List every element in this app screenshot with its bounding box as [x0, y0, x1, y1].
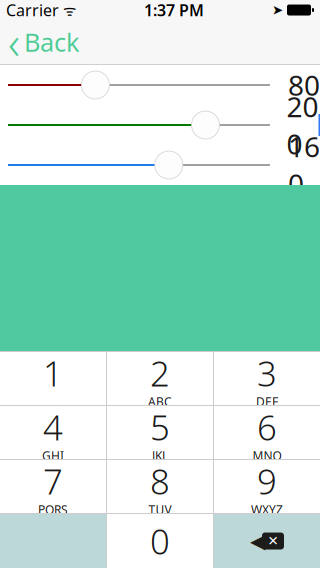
- button[interactable]: 7: [0, 460, 106, 513]
- staticText: 1: [43, 350, 63, 396]
- button[interactable]: 0: [107, 514, 213, 568]
- staticText: Carrier: [6, 0, 59, 21]
- button[interactable]: ‹: [0, 20, 90, 64]
- button[interactable]: 1: [0, 352, 106, 405]
- staticText: ᯤ: [59, 0, 76, 20]
- button[interactable]: 2: [107, 352, 213, 405]
- staticText: ABC: [148, 394, 172, 409]
- button[interactable]: 8: [107, 460, 213, 513]
- staticText: 7: [43, 458, 63, 504]
- staticText: 200: [286, 88, 318, 162]
- button[interactable]: 9: [214, 460, 320, 513]
- staticText: JKL: [152, 448, 168, 463]
- button[interactable]: 4: [0, 406, 106, 459]
- staticText: 80: [288, 66, 320, 104]
- staticText: 2: [150, 350, 170, 396]
- staticText: ◀: [250, 530, 265, 552]
- staticText: 5: [150, 404, 170, 450]
- staticText: MNO: [252, 448, 281, 463]
- staticText: 3: [257, 350, 277, 396]
- staticText: 9: [257, 458, 277, 504]
- staticText: TUV: [148, 502, 171, 517]
- staticText: DEF: [256, 394, 278, 409]
- staticText: Back: [24, 25, 80, 59]
- staticText: 4: [43, 404, 63, 450]
- staticText: ‹: [8, 12, 20, 72]
- staticText: ➤: [272, 2, 283, 17]
- staticText: 160: [288, 128, 320, 202]
- staticText: PQRS: [38, 502, 68, 517]
- staticText: 6: [257, 404, 277, 450]
- button[interactable]: Delete: [214, 514, 320, 568]
- button[interactable]: 6: [214, 406, 320, 459]
- staticText: 8: [150, 458, 170, 504]
- staticText: 0: [150, 518, 170, 564]
- staticText: 1:37 PM: [144, 0, 204, 21]
- staticText: GHI: [42, 448, 64, 463]
- staticText: ✕: [267, 533, 278, 548]
- button[interactable]: 3: [214, 352, 320, 405]
- staticText: WXYZ: [251, 502, 283, 517]
- button[interactable]: 5: [107, 406, 213, 459]
